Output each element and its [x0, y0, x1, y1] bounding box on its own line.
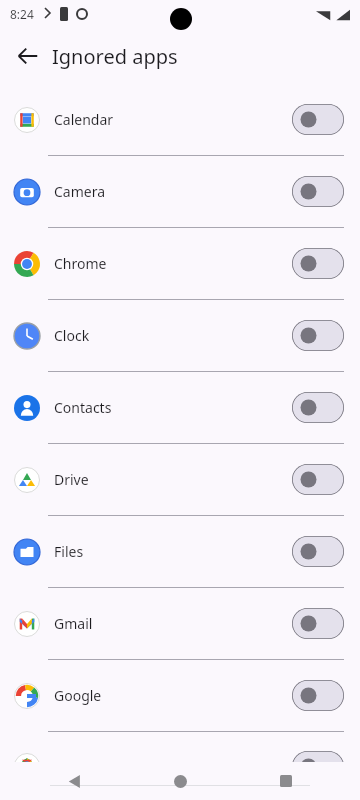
button[interactable]: Back: [56, 763, 92, 799]
button[interactable]: Contacts: [0, 372, 360, 443]
button[interactable]: Toggle: [292, 392, 344, 423]
button[interactable]: Camera: [0, 156, 360, 227]
button[interactable]: Toggle: [292, 104, 344, 135]
staticText: Clock: [54, 326, 292, 345]
staticText: Drive: [54, 470, 292, 489]
button[interactable]: Toggle: [292, 536, 344, 567]
staticText: Gmail: [54, 614, 292, 633]
staticText: Camera: [54, 182, 292, 201]
staticText: Contacts: [54, 398, 292, 417]
button[interactable]: Clock: [0, 300, 360, 371]
button[interactable]: Toggle: [292, 320, 344, 351]
staticText: Chrome: [54, 254, 292, 273]
button[interactable]: Toggle: [292, 680, 344, 711]
button[interactable]: Drive: [0, 444, 360, 515]
button[interactable]: Gmail: [0, 588, 360, 659]
staticText: 8:24: [10, 6, 34, 22]
staticText: Files: [54, 542, 292, 561]
button[interactable]: Maps: [0, 732, 360, 800]
staticText: Google: [54, 686, 292, 705]
button[interactable]: Chrome: [0, 228, 360, 299]
button[interactable]: Calendar: [0, 84, 360, 155]
button[interactable]: Toggle: [292, 464, 344, 495]
button[interactable]: Toggle: [292, 248, 344, 279]
staticText: Calendar: [54, 110, 292, 129]
button[interactable]: Files: [0, 516, 360, 587]
button[interactable]: Toggle: [292, 751, 344, 782]
staticText: Maps: [54, 757, 292, 776]
button[interactable]: Google: [0, 660, 360, 731]
button[interactable]: Home: [162, 763, 198, 799]
button[interactable]: Recents: [268, 763, 304, 799]
button[interactable]: Toggle: [292, 176, 344, 207]
button[interactable]: Toggle: [292, 608, 344, 639]
button[interactable]: Back: [8, 36, 48, 76]
staticText: Ignored apps: [52, 43, 178, 70]
